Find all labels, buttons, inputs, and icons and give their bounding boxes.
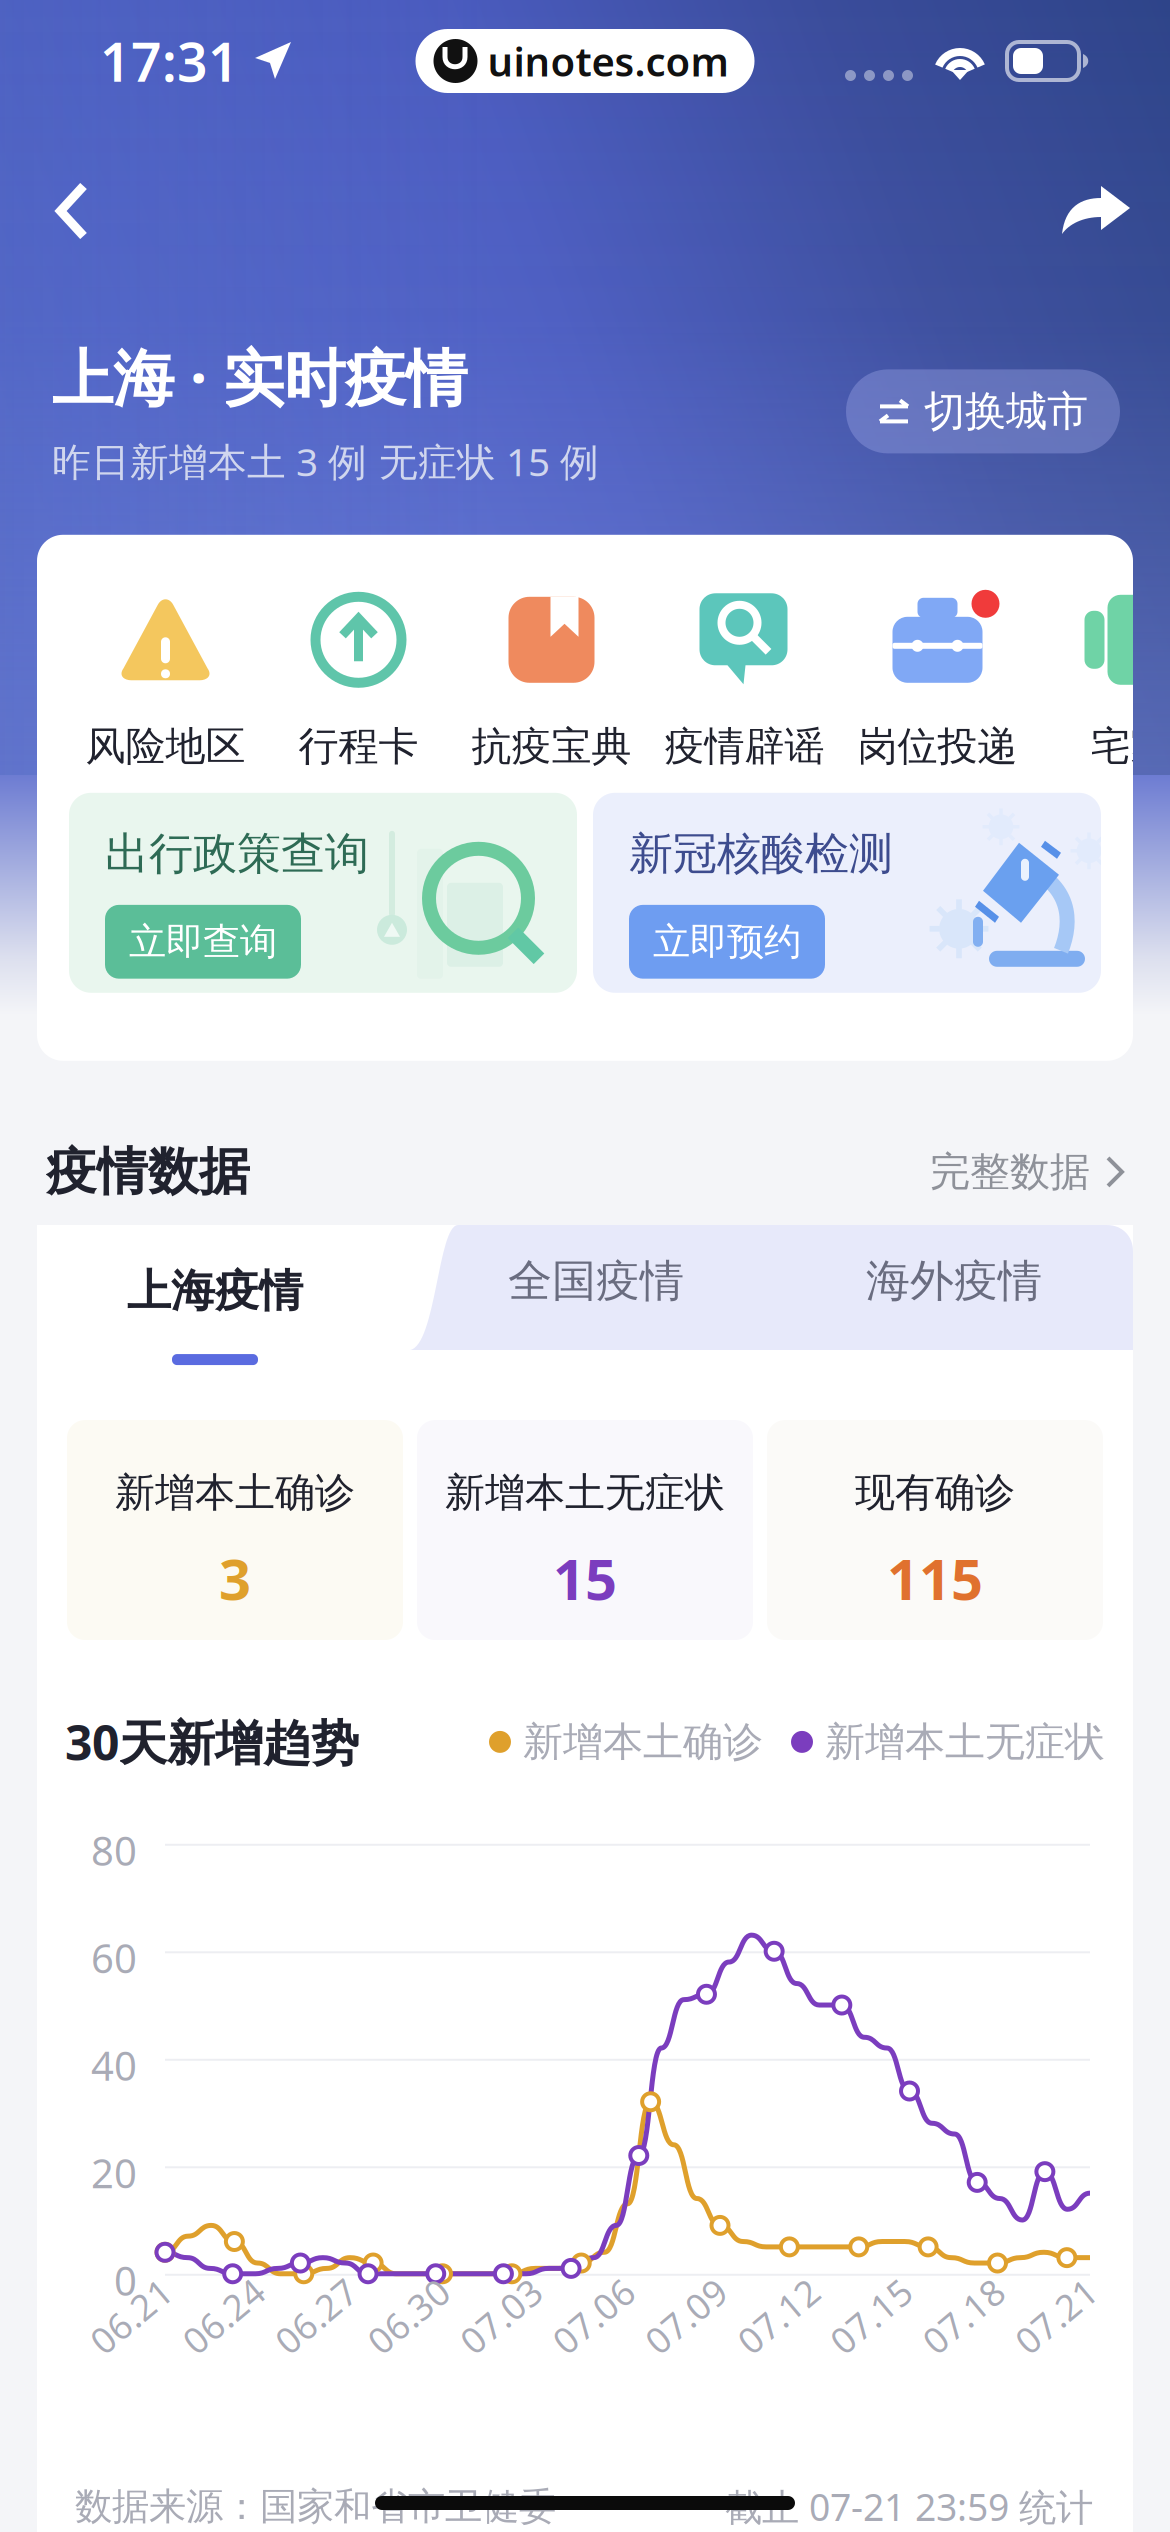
button[interactable]: Back bbox=[27, 168, 117, 254]
staticText: 06.27 bbox=[269, 2292, 363, 2340]
staticText: 07.12 bbox=[731, 2292, 825, 2340]
staticText: 疫情数据 bbox=[46, 1141, 250, 1203]
staticText: 06.24 bbox=[176, 2292, 270, 2340]
button[interactable]: 疫情辟谣 bbox=[648, 594, 841, 764]
staticText: 0 bbox=[114, 2254, 137, 2307]
staticText: 30天新增趋势 bbox=[65, 1710, 359, 1774]
staticText: 115 bbox=[887, 1541, 983, 1616]
staticText: 07.21 bbox=[1009, 2292, 1103, 2340]
staticText: 行程卡 bbox=[298, 722, 418, 771]
button[interactable]: 风险地区 bbox=[69, 594, 262, 764]
button[interactable]: Share bbox=[1050, 168, 1140, 254]
staticText: 数据来源：国家和省市卫健委 bbox=[75, 2484, 556, 2529]
staticText: 06.30 bbox=[361, 2292, 455, 2340]
button[interactable]: 宅家 bbox=[1034, 594, 1170, 764]
staticText: 疫情辟谣 bbox=[664, 722, 824, 771]
staticText: 80 bbox=[91, 1824, 137, 1877]
button[interactable]: 出行政策查询 bbox=[69, 793, 577, 993]
staticText: 新增本土无症状 bbox=[445, 1468, 725, 1517]
staticText: 3 bbox=[219, 1541, 251, 1616]
staticText: 07.09 bbox=[639, 2292, 733, 2340]
staticText: 风险地区 bbox=[85, 722, 245, 771]
staticText: 上海 · 实时疫情 bbox=[52, 336, 467, 417]
staticText: 昨日新增本土 3 例 无症状 15 例 bbox=[52, 435, 599, 487]
staticText: 新增本土确诊 bbox=[523, 1717, 763, 1766]
button[interactable]: 切换城市 bbox=[846, 369, 1120, 453]
staticText: 宅家 bbox=[1090, 722, 1170, 771]
staticText: 07.15 bbox=[824, 2292, 918, 2340]
staticText: 20 bbox=[91, 2146, 137, 2199]
staticText: 抗疫宝典 bbox=[471, 722, 631, 771]
staticText: 全国疫情 bbox=[508, 1254, 684, 1308]
staticText: 截止 07-21 23:59 统计 bbox=[725, 2482, 1093, 2531]
staticText: 立即预约 bbox=[653, 919, 801, 965]
button[interactable]: 新冠核酸检测 bbox=[593, 793, 1101, 993]
staticText: 新冠核酸检测 bbox=[629, 827, 893, 881]
staticText: 15 bbox=[553, 1541, 617, 1616]
staticText: 06.21 bbox=[84, 2292, 178, 2340]
button[interactable]: 行程卡 bbox=[262, 594, 455, 764]
staticText: 海外疫情 bbox=[866, 1254, 1042, 1308]
staticText: 新增本土无症状 bbox=[825, 1717, 1105, 1766]
button[interactable]: 岗位投递 bbox=[841, 594, 1034, 764]
staticText: 现有确诊 bbox=[855, 1468, 1015, 1517]
staticText: uinotes.com bbox=[487, 34, 728, 87]
button[interactable]: 抗疫宝典 bbox=[455, 594, 648, 764]
staticText: 切换城市 bbox=[924, 386, 1088, 437]
staticText: 上海疫情 bbox=[127, 1264, 303, 1318]
staticText: 07.06 bbox=[546, 2292, 640, 2340]
staticText: 新增本土确诊 bbox=[115, 1468, 355, 1517]
staticText: 岗位投递 bbox=[857, 722, 1017, 771]
staticText: 出行政策查询 bbox=[105, 827, 369, 881]
button[interactable]: 完整数据 bbox=[930, 1147, 1124, 1196]
button[interactable]: 上海疫情 bbox=[37, 1220, 417, 1360]
staticText: 40 bbox=[91, 2039, 137, 2092]
staticText: 07.03 bbox=[454, 2292, 548, 2340]
staticText: 60 bbox=[91, 1931, 137, 1984]
staticText: 17:31 bbox=[100, 26, 239, 96]
staticText: 07.18 bbox=[916, 2292, 1010, 2340]
staticText: 完整数据 bbox=[930, 1147, 1090, 1196]
staticText: 立即查询 bbox=[129, 919, 277, 965]
button[interactable]: 海外疫情 bbox=[775, 1216, 1133, 1364]
button[interactable]: 全国疫情 bbox=[417, 1216, 775, 1364]
